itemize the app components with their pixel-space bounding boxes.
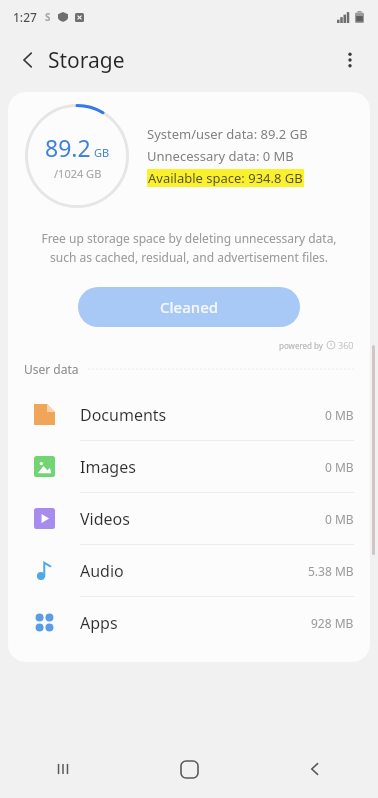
button[interactable]: Images (8, 441, 370, 492)
staticText: User data (24, 361, 79, 377)
staticText: 928 MB (311, 615, 354, 631)
button[interactable]: Audio (8, 545, 370, 596)
staticText: 0 MB (325, 459, 354, 475)
button[interactable]: Home (126, 740, 252, 798)
staticText: System/user data: 89.2 GB (147, 125, 308, 143)
staticText: S (45, 10, 51, 24)
staticText: /1024 GB (54, 166, 102, 181)
staticText: Free up storage space by deleting unnece… (24, 230, 354, 265)
button[interactable]: Cleaned (78, 287, 300, 327)
button[interactable]: Recent apps (0, 740, 126, 798)
button[interactable]: Back (8, 40, 48, 80)
staticText: 5.38 MB (308, 563, 354, 579)
staticText: powered by (279, 340, 323, 351)
staticText: 0 MB (325, 407, 354, 423)
staticText: GB (94, 145, 110, 160)
staticText: Images (80, 456, 136, 478)
staticText: Audio (80, 560, 124, 582)
staticText: Storage (48, 46, 125, 75)
button[interactable]: Back (252, 740, 378, 798)
button[interactable]: Videos (8, 493, 370, 544)
staticText: Available space: 934.8 GB (148, 169, 303, 187)
button[interactable]: More options (330, 40, 370, 80)
staticText: 89.2 (45, 132, 91, 163)
staticText: 1:27 (13, 9, 37, 25)
staticText: 0 MB (325, 511, 354, 527)
staticText: Documents (80, 404, 167, 426)
button[interactable]: Apps (8, 597, 370, 648)
staticText: Unnecessary data: 0 MB (147, 147, 294, 165)
button[interactable]: Documents (8, 389, 370, 440)
staticText: 360 (338, 339, 354, 351)
staticText: Apps (80, 612, 118, 634)
staticText: Cleaned (160, 297, 219, 317)
staticText: Videos (80, 508, 130, 530)
